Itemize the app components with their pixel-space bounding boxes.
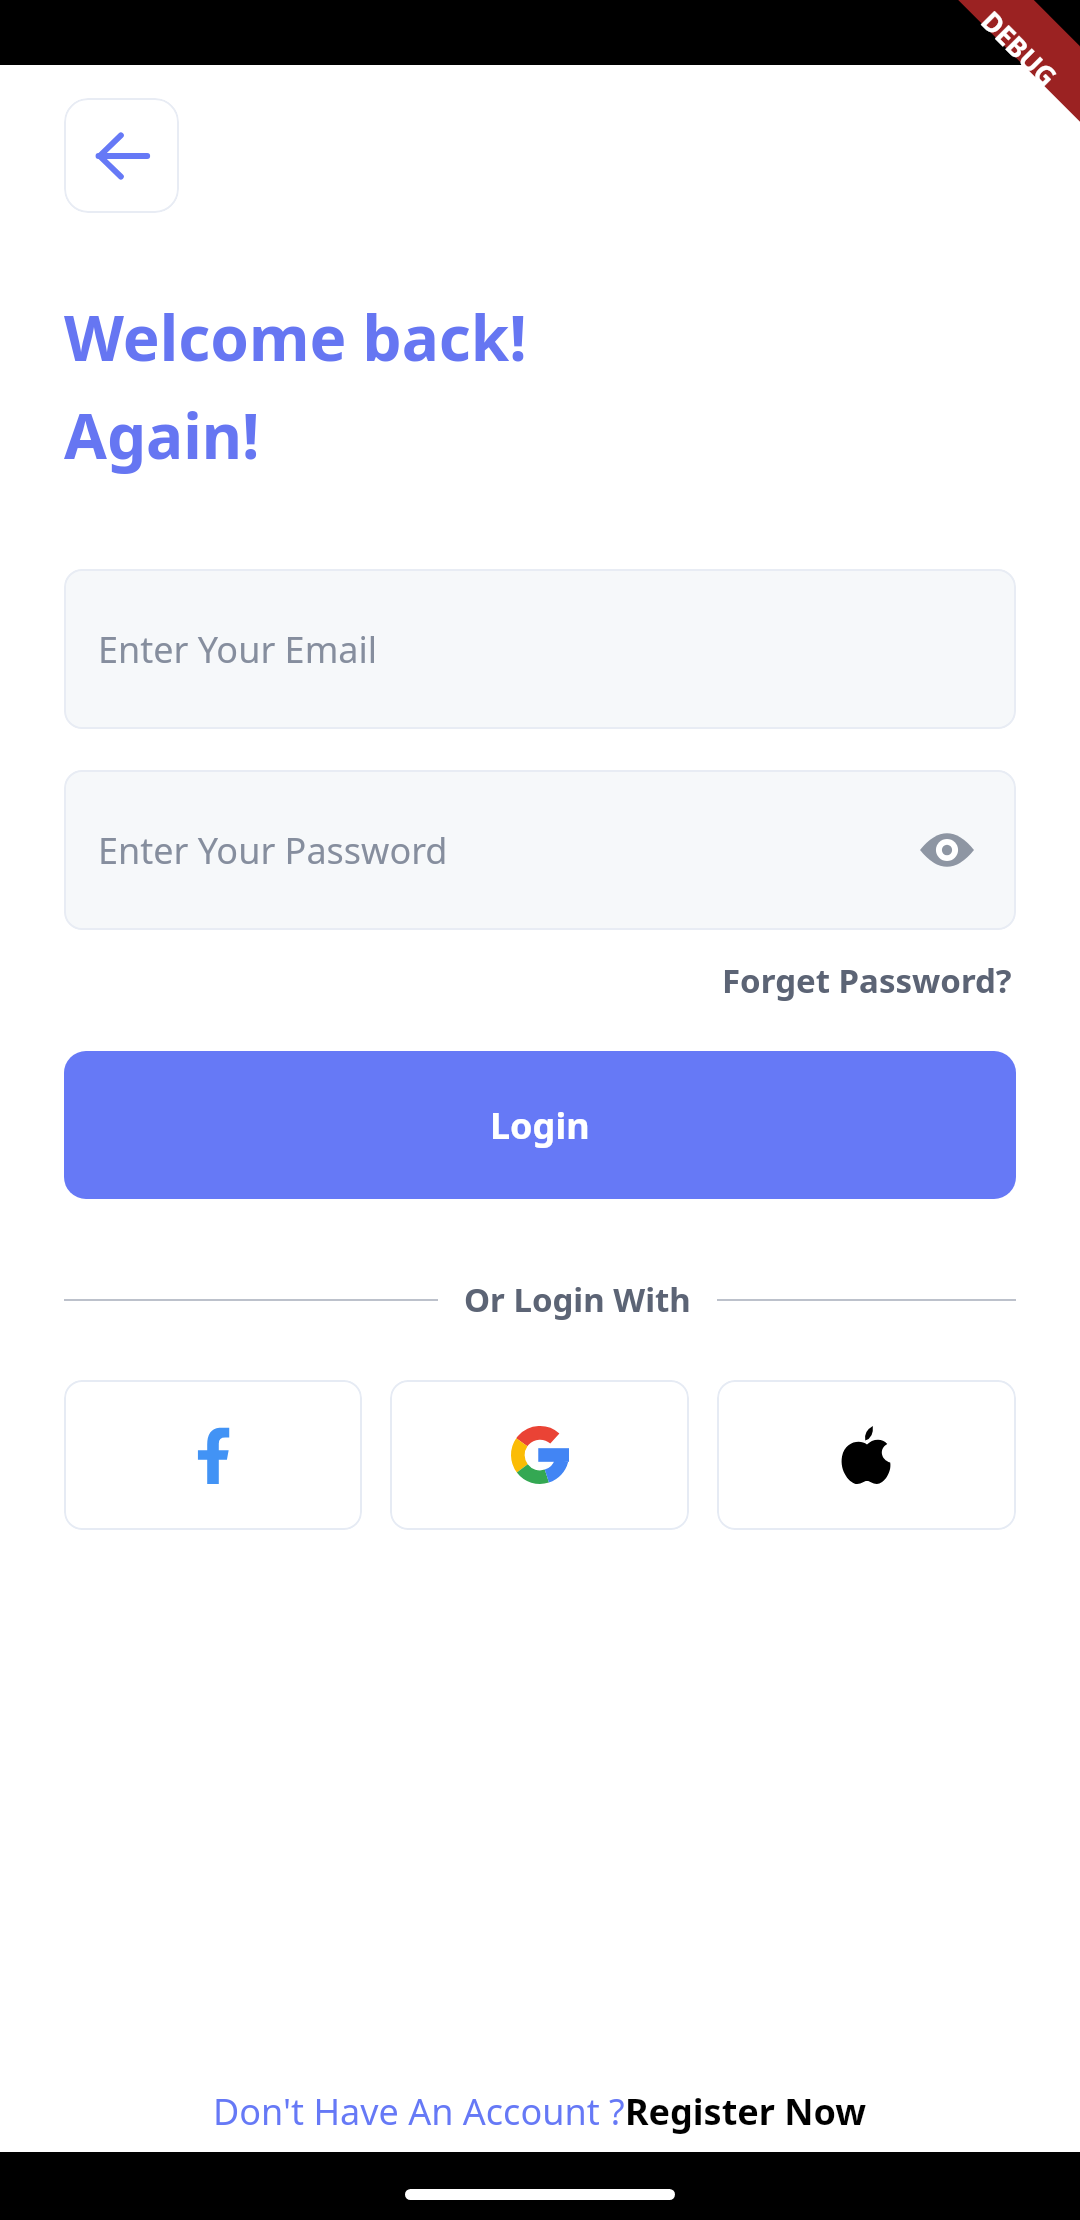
staticText: Or Login With — [464, 1277, 691, 1322]
button[interactable]: Sign in with Apple — [717, 1380, 1016, 1530]
staticText: Don't Have An Account ? — [213, 2087, 625, 2136]
staticText: DEBUG — [973, 2, 1065, 94]
button[interactable]: Sign in with Facebook — [64, 1380, 362, 1530]
button[interactable]: Don't Have An Account ? — [0, 2087, 1080, 2136]
staticText: Enter Your Email — [98, 625, 378, 674]
staticText: Enter Your Password — [98, 826, 448, 875]
button[interactable]: Show password — [912, 815, 982, 885]
button[interactable]: Enter Your Email — [64, 569, 1016, 729]
staticText: Login — [490, 1101, 590, 1150]
staticText: Again! — [64, 393, 260, 477]
button[interactable]: Sign in with Google — [390, 1380, 689, 1530]
staticText: Register Now — [625, 2087, 867, 2136]
button[interactable]: Login — [64, 1051, 1016, 1199]
button[interactable]: Enter Your Password — [64, 770, 1016, 930]
staticText: Welcome back! — [64, 295, 527, 379]
button[interactable]: Forget Password? — [718, 954, 1016, 1007]
button[interactable]: Back — [64, 98, 179, 213]
staticText: Forget Password? — [722, 958, 1012, 1003]
